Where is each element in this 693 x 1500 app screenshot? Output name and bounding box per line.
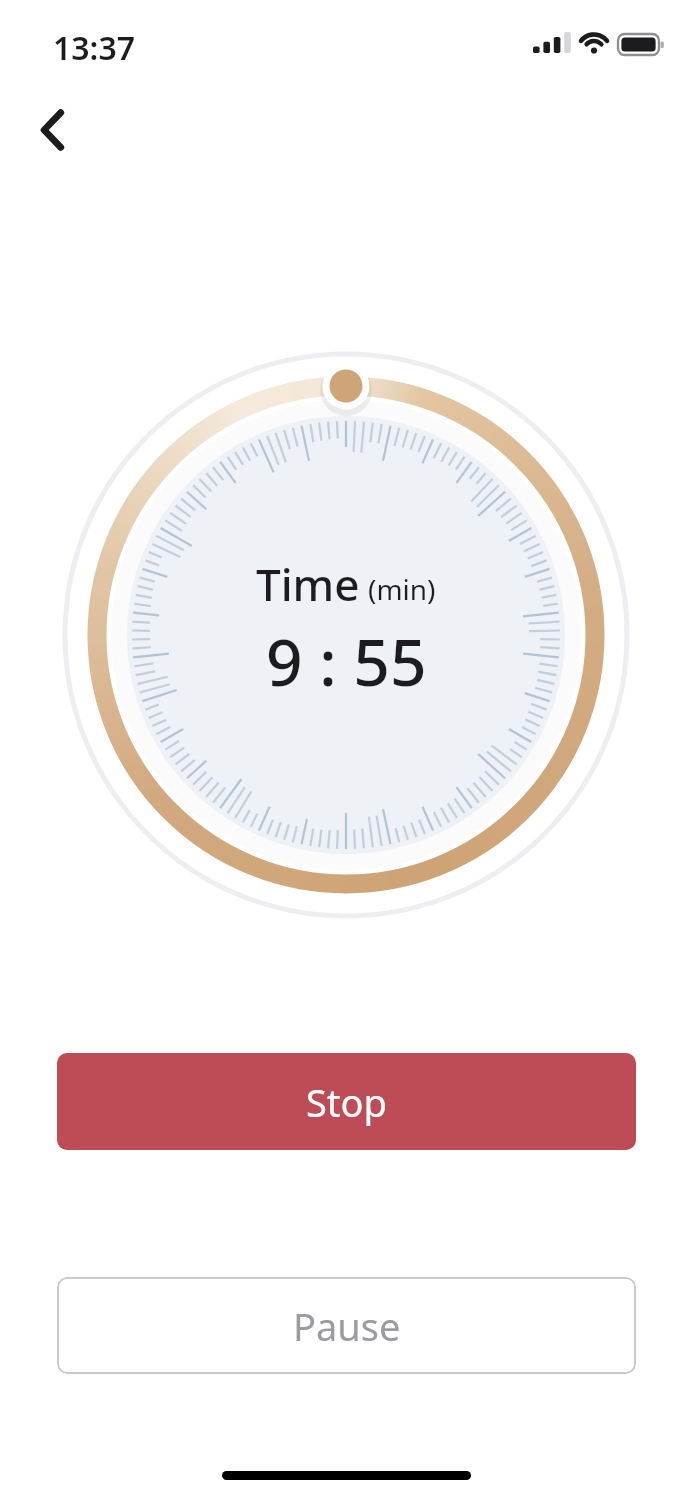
staticText: 13:37 [53,26,136,70]
button[interactable]: Stop [57,1053,636,1150]
staticText: (min) [368,570,436,608]
staticText: Time [256,554,360,614]
button[interactable]: Pause [57,1277,636,1374]
staticText: Stop [306,1076,387,1128]
button[interactable]: Back [22,96,90,164]
staticText: 9 : 55 [266,618,427,705]
staticText: Pause [293,1300,401,1352]
